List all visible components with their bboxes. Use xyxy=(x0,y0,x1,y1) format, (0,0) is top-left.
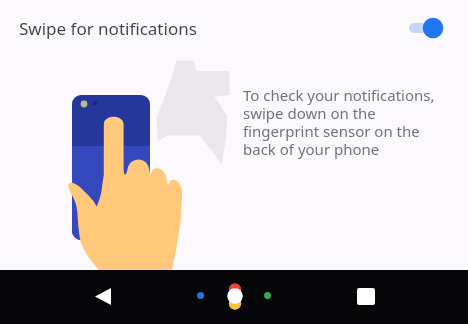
button[interactable]: Swipe for notifications toggle, on xyxy=(400,13,454,43)
button[interactable]: Back xyxy=(85,274,121,318)
button[interactable]: Home, Assistant xyxy=(219,280,251,312)
staticText: To check your notifications, swipe down … xyxy=(243,85,435,160)
button[interactable]: Swipe for notifications xyxy=(19,17,197,40)
button[interactable]: Recent apps xyxy=(348,274,384,318)
